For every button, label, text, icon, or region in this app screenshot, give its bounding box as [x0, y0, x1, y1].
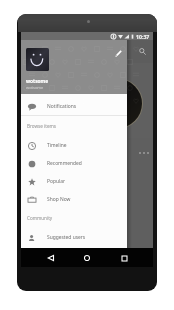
button[interactable]: Home — [80, 251, 94, 265]
staticText: Community — [27, 215, 53, 221]
staticText: Browse items — [27, 123, 57, 129]
button[interactable]: Back — [44, 251, 58, 265]
button[interactable]: Search — [137, 46, 148, 57]
staticText: 10:37 — [136, 33, 150, 40]
staticText: Notifications — [47, 103, 77, 110]
staticText: wotsome — [26, 85, 44, 90]
button[interactable]: Timeline — [21, 136, 127, 154]
button[interactable]: Edit profile — [113, 48, 124, 59]
button[interactable]: Notifications — [21, 97, 127, 115]
button[interactable]: Shop Now — [21, 190, 127, 208]
staticText: Suggested users — [47, 234, 86, 241]
staticText: Popular — [47, 178, 65, 185]
button[interactable]: Recommended — [21, 154, 127, 172]
staticText: Shop Now — [47, 196, 71, 203]
staticText: Recommended — [47, 160, 82, 167]
staticText: Timeline — [47, 142, 67, 149]
button[interactable]: Suggested users — [21, 228, 127, 246]
staticText: wotsome — [26, 78, 49, 85]
button[interactable]: Recent apps — [117, 251, 131, 265]
button[interactable]: Popular — [21, 172, 127, 190]
